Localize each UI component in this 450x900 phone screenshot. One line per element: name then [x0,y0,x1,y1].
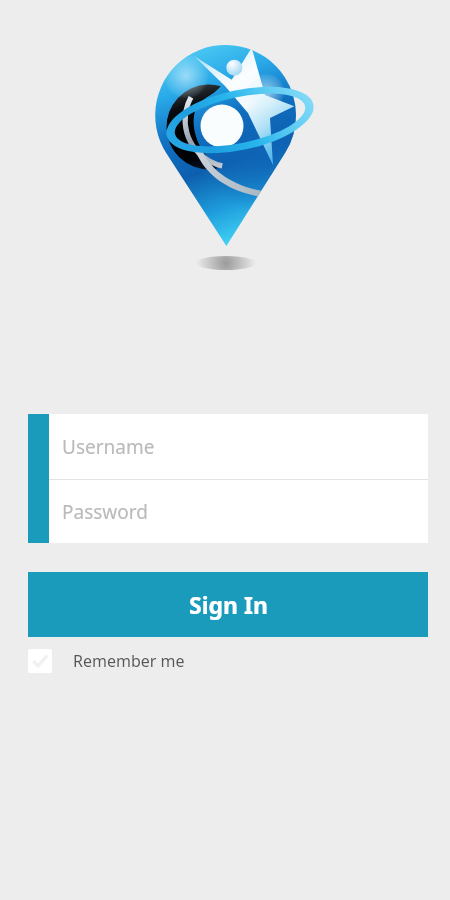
staticText: Password [62,499,148,525]
staticText: Username [62,434,155,460]
button[interactable]: Remember me [28,645,185,677]
button[interactable]: Username [28,414,428,479]
button[interactable]: Sign In [28,572,428,637]
staticText: Remember me [73,650,185,672]
button[interactable]: Password [28,480,428,543]
staticText: Sign In [189,589,268,620]
